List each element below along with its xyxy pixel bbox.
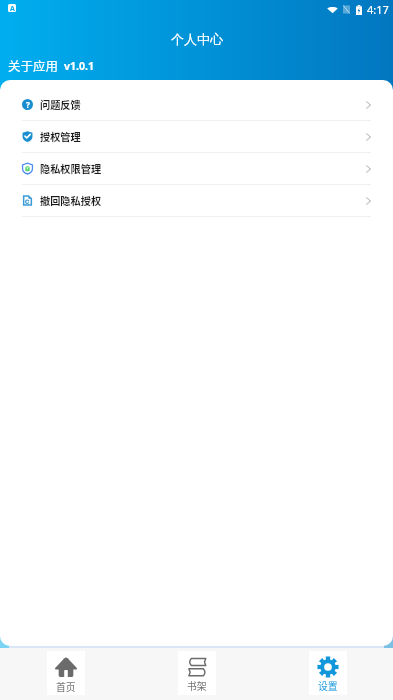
button[interactable]: Settings <box>309 651 347 695</box>
staticText: 问题反馈 <box>40 97 81 112</box>
staticText: A <box>10 4 15 12</box>
staticText: 关于应用 <box>8 56 59 74</box>
button[interactable]: 授权管理 <box>0 121 393 153</box>
staticText: 4:17 <box>367 2 389 17</box>
staticText: 设置 <box>318 679 338 693</box>
staticText: 授权管理 <box>40 129 81 144</box>
staticText: 撤回隐私授权 <box>40 193 102 208</box>
staticText: ? <box>26 99 30 110</box>
button[interactable]: ? <box>0 89 393 121</box>
staticText: 首页 <box>56 680 76 694</box>
staticText: v1.0.1 <box>64 59 94 73</box>
button[interactable]: Home <box>47 651 85 695</box>
button[interactable]: Bookshelf <box>178 651 216 695</box>
button[interactable]: 隐私权限管理 <box>0 153 393 185</box>
staticText: 个人中心 <box>171 31 223 47</box>
button[interactable]: 撤回隐私授权 <box>0 185 393 217</box>
staticText: 隐私权限管理 <box>40 161 102 176</box>
staticText: 书架 <box>187 679 207 693</box>
